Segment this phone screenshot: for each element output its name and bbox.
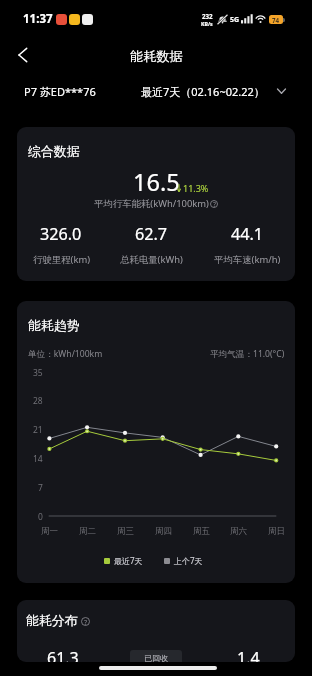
staticText: 平均气温：11.0(°C) — [210, 348, 285, 360]
staticText: 综合数据 — [28, 144, 80, 160]
button[interactable]: Back — [7, 38, 41, 72]
staticText: 最近7天 — [114, 555, 143, 566]
staticText: 62.7 — [135, 223, 168, 245]
staticText: 能耗数据 — [130, 48, 183, 65]
staticText: 平均车速(km/h) — [214, 253, 281, 266]
staticText: 11.3% — [183, 182, 209, 194]
button[interactable]: P7 苏ED***76 — [24, 84, 96, 99]
staticText: 平均行车能耗(kWh/100km) — [94, 197, 209, 210]
staticText: 7 — [38, 482, 43, 494]
staticText: 74 — [272, 16, 280, 24]
staticText: ? — [213, 200, 216, 208]
staticText: 35 — [33, 367, 43, 379]
staticText: 周日 — [268, 526, 285, 537]
staticText: 周三 — [117, 526, 134, 537]
staticText: 0 — [38, 511, 43, 523]
staticText: 21 — [33, 424, 43, 436]
button[interactable]: 最近7天（02.16~02.22） — [141, 84, 286, 99]
staticText: 最近7天（02.16~02.22） — [141, 84, 265, 99]
staticText: 周六 — [230, 526, 247, 537]
staticText: 16.5 — [133, 166, 180, 198]
staticText: 5G — [230, 15, 240, 25]
staticText: 上个7天 — [174, 555, 203, 566]
staticText: P7 苏ED***76 — [24, 84, 96, 99]
staticText: 能耗趋势 — [28, 318, 80, 334]
staticText: 周二 — [79, 526, 96, 537]
staticText: 周四 — [155, 526, 172, 537]
staticText: ? — [84, 617, 88, 626]
staticText: 11:37 — [23, 11, 53, 27]
staticText: 28 — [33, 395, 43, 407]
staticText: 326.0 — [40, 223, 82, 245]
staticText: 能耗分布 — [26, 613, 78, 629]
staticText: 232 — [202, 12, 213, 20]
staticText: 总耗电量(kWh) — [120, 253, 183, 266]
staticText: 行驶里程(km) — [33, 253, 90, 266]
staticText: 周一 — [41, 526, 58, 537]
staticText: 已回收 — [144, 653, 168, 662]
staticText: 61.3 — [47, 647, 79, 662]
staticText: 1.4 — [237, 647, 260, 662]
staticText: KB/s — [201, 20, 213, 27]
staticText: 14 — [33, 453, 43, 465]
staticText: 周五 — [193, 526, 210, 537]
staticText: 44.1 — [231, 223, 264, 245]
staticText: 单位：kWh/100km — [28, 348, 103, 360]
